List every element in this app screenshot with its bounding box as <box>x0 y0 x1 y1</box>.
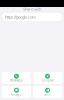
button[interactable]: WhatsApp <box>2 72 31 84</box>
staticText: More <box>44 93 51 96</box>
staticText: Messages <box>10 93 22 96</box>
button[interactable]: More <box>33 86 62 98</box>
staticText: https://google.com <box>5 14 36 20</box>
staticText: Telegram <box>41 79 53 82</box>
button[interactable]: Messages <box>2 86 31 98</box>
button[interactable]: Telegram <box>33 72 62 84</box>
staticText: Share with <box>23 6 41 12</box>
staticText: WhatsApp <box>10 79 23 82</box>
